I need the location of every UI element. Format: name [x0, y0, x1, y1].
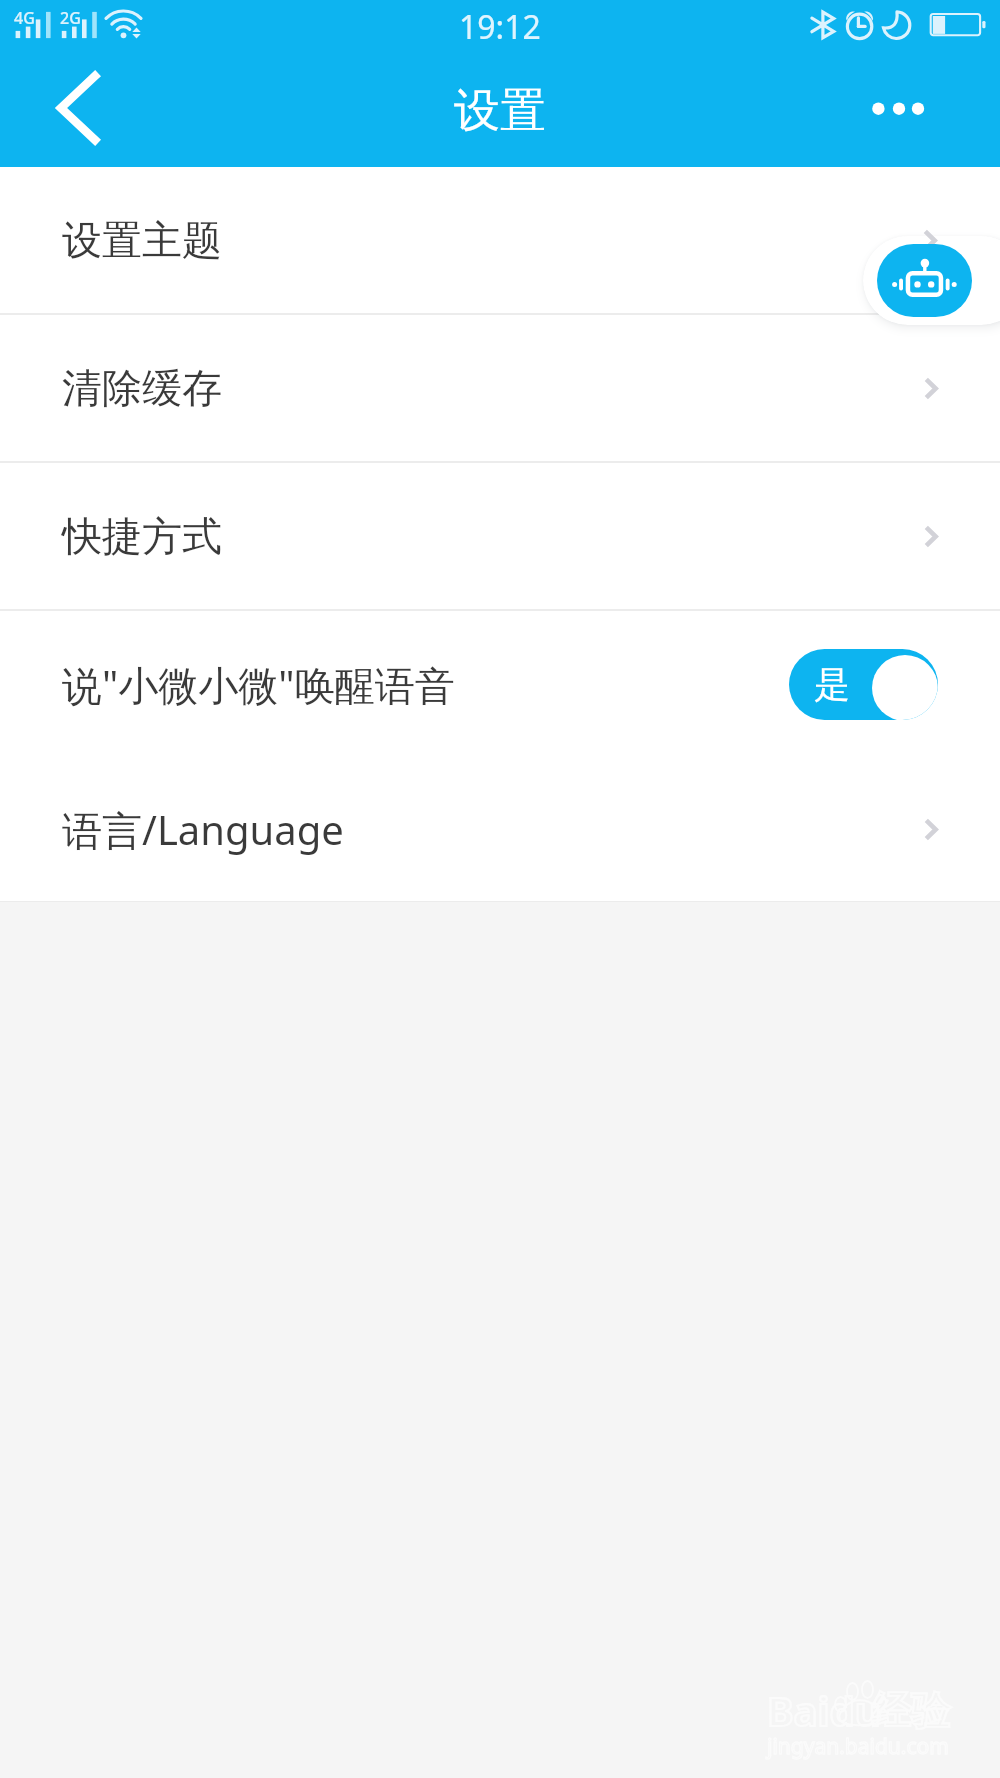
staticText: 快捷方式: [62, 511, 222, 561]
button[interactable]: Voice wake toggle, on: [789, 649, 938, 720]
button[interactable]: 快捷方式: [0, 463, 1000, 609]
button[interactable]: Assistant: [877, 244, 972, 317]
staticText: 是: [814, 662, 850, 707]
button[interactable]: 说"小微小微"唤醒语音: [0, 611, 1000, 757]
staticText: 19:12: [459, 5, 541, 49]
staticText: 说"小微小微"唤醒语音: [62, 657, 455, 712]
staticText: 清除缓存: [62, 363, 222, 413]
button[interactable]: 语言/Language: [0, 757, 1000, 901]
button[interactable]: Back: [30, 64, 118, 152]
staticText: 4G: [14, 7, 35, 29]
staticText: 设置主题: [62, 215, 222, 265]
staticText: 2G: [60, 7, 81, 29]
staticText: 设置: [454, 82, 546, 140]
staticText: 语言/Language: [62, 802, 344, 857]
button[interactable]: More options: [858, 68, 940, 150]
button[interactable]: 设置主题: [0, 167, 1000, 313]
button[interactable]: 清除缓存: [0, 315, 1000, 461]
